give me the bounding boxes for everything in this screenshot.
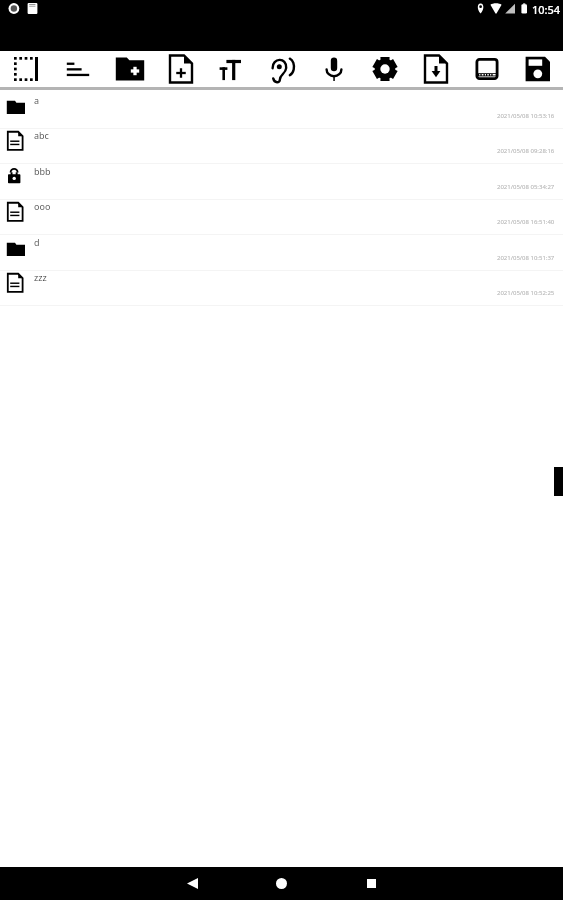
staticText: 2021/05/08 05:34:27 (497, 183, 555, 191)
button[interactable]: New file (155, 51, 206, 87)
staticText: 10:54 (532, 2, 561, 17)
button[interactable]: Select all (0, 51, 52, 87)
staticText: a (34, 94, 40, 106)
staticText: bbb (34, 165, 51, 177)
button[interactable]: Keyboard (461, 51, 512, 87)
button[interactable]: ooo (0, 199, 563, 235)
button[interactable]: Settings (359, 51, 410, 87)
button[interactable]: abc (0, 128, 563, 164)
staticText: ooo (34, 200, 51, 212)
staticText: abc (34, 129, 49, 141)
staticText: zzz (34, 271, 47, 283)
button[interactable]: Listen (257, 51, 308, 87)
button[interactable]: Home (259, 867, 303, 900)
staticText: 2021/05/08 09:28:16 (497, 147, 555, 155)
staticText: 2021/05/08 16:51:40 (497, 218, 555, 226)
staticText: 2021/05/08 10:51:37 (497, 254, 555, 262)
button[interactable]: New folder (104, 51, 155, 87)
staticText: 2021/05/08 10:52:25 (497, 289, 555, 297)
button[interactable]: Import file (410, 51, 461, 87)
button[interactable]: a (0, 93, 563, 129)
button[interactable]: Back (170, 867, 214, 900)
button[interactable]: Voice input (308, 51, 359, 87)
button[interactable]: Recent apps (349, 867, 393, 900)
button[interactable]: bbb (0, 164, 563, 200)
button[interactable]: Sort (52, 51, 104, 87)
staticText: 2021/05/08 10:53:16 (497, 112, 555, 120)
staticText: d (34, 236, 40, 248)
button[interactable]: Save (512, 51, 563, 87)
button[interactable]: Font size (206, 51, 257, 87)
button[interactable]: d (0, 235, 563, 271)
button[interactable]: zzz (0, 270, 563, 306)
